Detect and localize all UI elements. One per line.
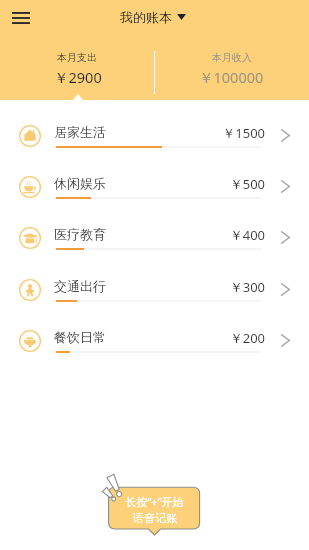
staticText: 医疗教育 bbox=[54, 226, 106, 242]
staticText: 本月收入 bbox=[212, 51, 252, 64]
button[interactable]: 休闲娱乐 bbox=[0, 161, 309, 212]
staticText: ￥200 bbox=[229, 329, 265, 347]
staticText: 语音记账 bbox=[133, 511, 177, 525]
staticText: ￥2900 bbox=[54, 67, 102, 87]
staticText: 我的账本 bbox=[120, 9, 172, 25]
button[interactable]: 居家生活 bbox=[0, 110, 309, 161]
staticText: 本月支出 bbox=[57, 51, 97, 64]
staticText: ￥100000 bbox=[199, 67, 264, 87]
staticText: ￥300 bbox=[229, 278, 265, 296]
button[interactable]: 我的账本 bbox=[120, 9, 186, 25]
button[interactable]: 医疗教育 bbox=[0, 212, 309, 263]
button[interactable]: 交通出行 bbox=[0, 264, 309, 315]
staticText: ￥1500 bbox=[222, 124, 265, 142]
staticText: ￥400 bbox=[229, 226, 265, 244]
button[interactable]: Menu bbox=[4, 1, 38, 35]
button[interactable]: 餐饮日常 bbox=[0, 315, 309, 366]
staticText: 交通出行 bbox=[54, 278, 106, 294]
staticText: 餐饮日常 bbox=[54, 329, 106, 345]
button[interactable]: 长按“+”开始 bbox=[109, 494, 200, 525]
staticText: 居家生活 bbox=[54, 124, 106, 140]
staticText: 长按“+”开始 bbox=[125, 494, 184, 509]
staticText: ￥500 bbox=[229, 175, 265, 193]
staticText: 休闲娱乐 bbox=[54, 175, 106, 191]
